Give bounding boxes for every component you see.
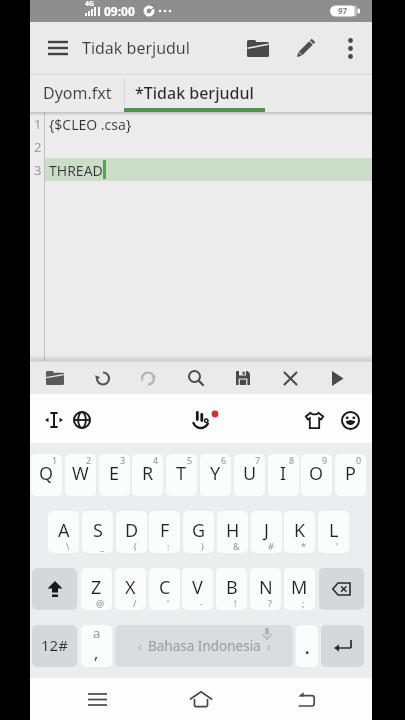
staticText: / [133,597,137,609]
button[interactable]: N [250,568,281,610]
button[interactable] [32,568,77,610]
button[interactable]: I [268,454,299,496]
button[interactable]: *Tidak berjudul [124,74,265,112]
button[interactable]: M [284,568,315,610]
button[interactable] [319,568,364,610]
button[interactable]: T [166,454,197,496]
button[interactable] [180,362,212,394]
button[interactable] [286,28,326,68]
staticText: @ [96,597,105,609]
staticText: ‹ [138,638,142,654]
staticText: 1 [52,454,58,466]
button[interactable] [274,362,306,394]
staticText: . [305,637,310,659]
staticText: G [192,518,206,543]
staticText: ' [167,597,170,609]
staticText: _ [100,540,104,552]
staticText: 2 [34,138,42,156]
staticText: F [160,518,170,543]
staticText: N [259,575,273,600]
staticText: \ [66,540,70,552]
button[interactable] [77,678,117,720]
staticText: 4G [85,0,95,9]
button[interactable]: Q [31,454,62,496]
staticText: {$CLEO .csa} [49,115,132,134]
button[interactable]: D [116,511,147,553]
staticText: THREAD [49,161,103,180]
button[interactable] [181,678,221,720]
button[interactable]: R [132,454,163,496]
button[interactable]: B [216,568,247,610]
button[interactable]: a [81,625,112,667]
button[interactable]: Z [81,568,112,610]
button[interactable] [330,28,370,68]
button[interactable] [238,28,278,68]
staticText: *Tidak berjudul [135,82,254,104]
button[interactable]: ‹ [115,625,293,667]
staticText: ? [268,597,272,609]
button[interactable]: E [99,454,130,496]
staticText: U [243,461,257,486]
staticText: 12# [41,635,68,655]
button[interactable]: Dyom.fxt [30,74,124,112]
button[interactable]: H [217,511,248,553]
button[interactable] [132,362,164,394]
staticText: A [58,518,70,543]
button[interactable]: C [149,568,180,610]
button[interactable]: P [335,454,366,496]
staticText: B [226,575,238,600]
staticText: ; [302,597,305,609]
staticText: Dyom.fxt [43,82,112,104]
button[interactable] [227,362,259,394]
staticText: V [192,575,203,600]
staticText: a [93,625,101,642]
button[interactable]: V [182,568,213,610]
button[interactable]: J [251,511,282,553]
staticText: : [167,540,170,552]
button[interactable] [298,404,330,436]
staticText: 97 [338,5,348,16]
staticText: E [109,461,120,486]
button[interactable] [183,404,219,436]
staticText: L [329,518,339,543]
button[interactable] [286,678,326,720]
staticText: 2 [86,454,92,466]
staticText: 5 [187,454,193,466]
button[interactable]: L [318,511,349,553]
staticText: D [125,518,139,543]
staticText: 1 [34,115,42,133]
button[interactable]: S [82,511,113,553]
button[interactable] [321,362,353,394]
staticText: 09:00 [104,3,135,19]
button[interactable] [38,28,78,68]
button[interactable] [321,625,364,667]
button[interactable] [39,362,71,394]
button[interactable]: W [65,454,96,496]
button[interactable]: Tidak berjudul [82,37,190,59]
staticText: 6 [221,454,227,466]
button[interactable]: G [183,511,214,553]
button[interactable]: 12# [32,625,77,667]
staticText: Z [91,575,102,600]
button[interactable]: F [149,511,180,553]
staticText: Y [210,461,221,486]
button[interactable]: U [234,454,265,496]
button[interactable]: O [301,454,332,496]
staticText: K [294,518,306,543]
button[interactable] [334,404,366,436]
button[interactable]: K [284,511,315,553]
button[interactable] [87,362,119,394]
button[interactable]: A [48,511,79,553]
staticText: W [72,461,89,486]
button[interactable]: . [296,625,318,667]
button[interactable]: Y [200,454,231,496]
staticText: * [301,540,306,552]
staticText: # [268,540,274,552]
staticText: J [264,518,269,543]
staticText: H [226,518,240,543]
staticText: Bahasa Indonesia [148,637,261,655]
staticText: ' [336,540,339,552]
button[interactable] [66,404,98,436]
button[interactable] [38,404,70,436]
button[interactable]: X [115,568,146,610]
